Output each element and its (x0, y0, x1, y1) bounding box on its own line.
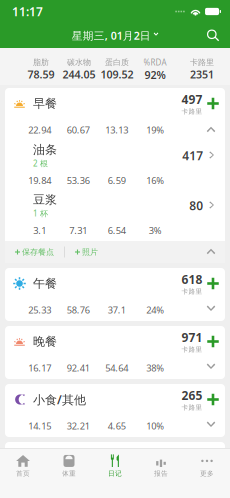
staticText: 午餐 (33, 276, 57, 291)
staticText: 3% (149, 224, 162, 237)
button[interactable]: Collapse breakfast (199, 241, 223, 263)
staticText: 首页 (16, 469, 30, 478)
button[interactable]: Add to 运动 (204, 444, 222, 470)
button[interactable]: 更多 (184, 448, 230, 486)
button[interactable]: 保存餐点 (12, 241, 57, 263)
staticText: %RDA (143, 57, 166, 68)
staticText: 54.64 (105, 362, 128, 374)
button[interactable]: 照片 (72, 241, 101, 263)
staticText: 卡路里 (181, 107, 202, 116)
staticText: 92.41 (67, 362, 90, 374)
staticText: 晚餐 (33, 334, 57, 349)
staticText: 109.52 (100, 67, 133, 81)
staticText: 油条 (33, 142, 57, 157)
staticText: 卡路里 (181, 403, 202, 412)
staticText: 60.67 (67, 124, 90, 136)
button[interactable]: 星期三, 01月2日 (64, 24, 166, 47)
staticText: 星期三, 01月2日 (72, 28, 151, 43)
staticText: 4.65 (108, 420, 126, 432)
staticText: 卡路里 (190, 57, 214, 67)
button[interactable]: Search (201, 23, 225, 47)
staticText: 265 (181, 387, 202, 403)
staticText: 13.13 (105, 124, 128, 136)
staticText: 417 (182, 147, 203, 163)
staticText: 报告 (154, 469, 168, 478)
staticText: 14.15 (28, 420, 51, 432)
staticText: 11:17 (12, 3, 43, 19)
staticText: 32.21 (67, 420, 90, 432)
staticText: 37.1 (108, 304, 126, 316)
staticText: 卡路里 (181, 287, 202, 296)
button[interactable]: 体重 (46, 448, 92, 486)
staticText: 22.94 (28, 124, 51, 136)
staticText: 更多 (200, 469, 214, 478)
button[interactable]: Expand 午餐 (199, 300, 223, 320)
staticText: 3.1 (33, 224, 46, 237)
staticText: 78.59 (27, 67, 54, 81)
button[interactable]: Expand 小食/其他 (199, 416, 223, 436)
staticText: 碳水物 (67, 57, 91, 67)
staticText: 10% (146, 420, 164, 432)
button[interactable]: Expand 晚餐 (199, 358, 223, 378)
button[interactable]: Add to 早餐 (204, 90, 222, 116)
staticText: 497 (181, 91, 202, 107)
staticText: 19.84 (28, 174, 51, 187)
staticText: 19% (146, 124, 164, 136)
button[interactable]: 报告 (138, 448, 184, 486)
staticText: 58.76 (67, 304, 90, 316)
staticText: 6.54 (108, 224, 126, 237)
staticText: 53.36 (67, 174, 90, 187)
staticText: 16.17 (28, 362, 51, 374)
staticText: 6.59 (108, 174, 126, 187)
staticText: 16% (146, 174, 164, 187)
button[interactable]: Add to 小食/其他 (204, 386, 222, 412)
staticText: 7.31 (69, 224, 87, 237)
button[interactable]: Collapse 早餐 (199, 120, 223, 140)
button[interactable]: Add to 午餐 (204, 270, 222, 296)
staticText: 92% (144, 68, 165, 82)
button[interactable]: 油条 (5, 141, 225, 191)
staticText: 体重 (62, 469, 76, 478)
staticText: 卡路里 (181, 345, 202, 354)
staticText: 38% (146, 362, 164, 374)
staticText: 25.33 (28, 304, 51, 316)
staticText: 618 (181, 271, 202, 287)
staticText: 保存餐点 (22, 247, 54, 257)
button[interactable]: Expand 运动 (199, 474, 223, 494)
staticText: 1 杯 (33, 208, 48, 219)
staticText: 2 根 (33, 158, 48, 169)
button[interactable]: 日记 (92, 448, 138, 486)
staticText: 2351 (190, 67, 214, 81)
staticText: 244.05 (62, 67, 95, 81)
staticText: 脂肪 (33, 57, 49, 67)
staticText: 照片 (82, 247, 98, 257)
staticText: 豆浆 (33, 192, 57, 207)
staticText: 971 (181, 329, 202, 345)
staticText: 日记 (108, 469, 122, 478)
staticText: 80 (189, 197, 203, 213)
button[interactable]: 首页 (0, 448, 46, 486)
button[interactable]: 豆浆 (5, 191, 225, 241)
button[interactable]: Add to 晚餐 (204, 328, 222, 354)
staticText: 24% (146, 304, 164, 316)
staticText: 蛋白质 (105, 57, 129, 67)
staticText: 早餐 (33, 96, 57, 111)
staticText: 小食/其他 (33, 391, 86, 407)
staticText: 0 (188, 445, 195, 461)
staticText: 卡路里 (181, 461, 202, 470)
